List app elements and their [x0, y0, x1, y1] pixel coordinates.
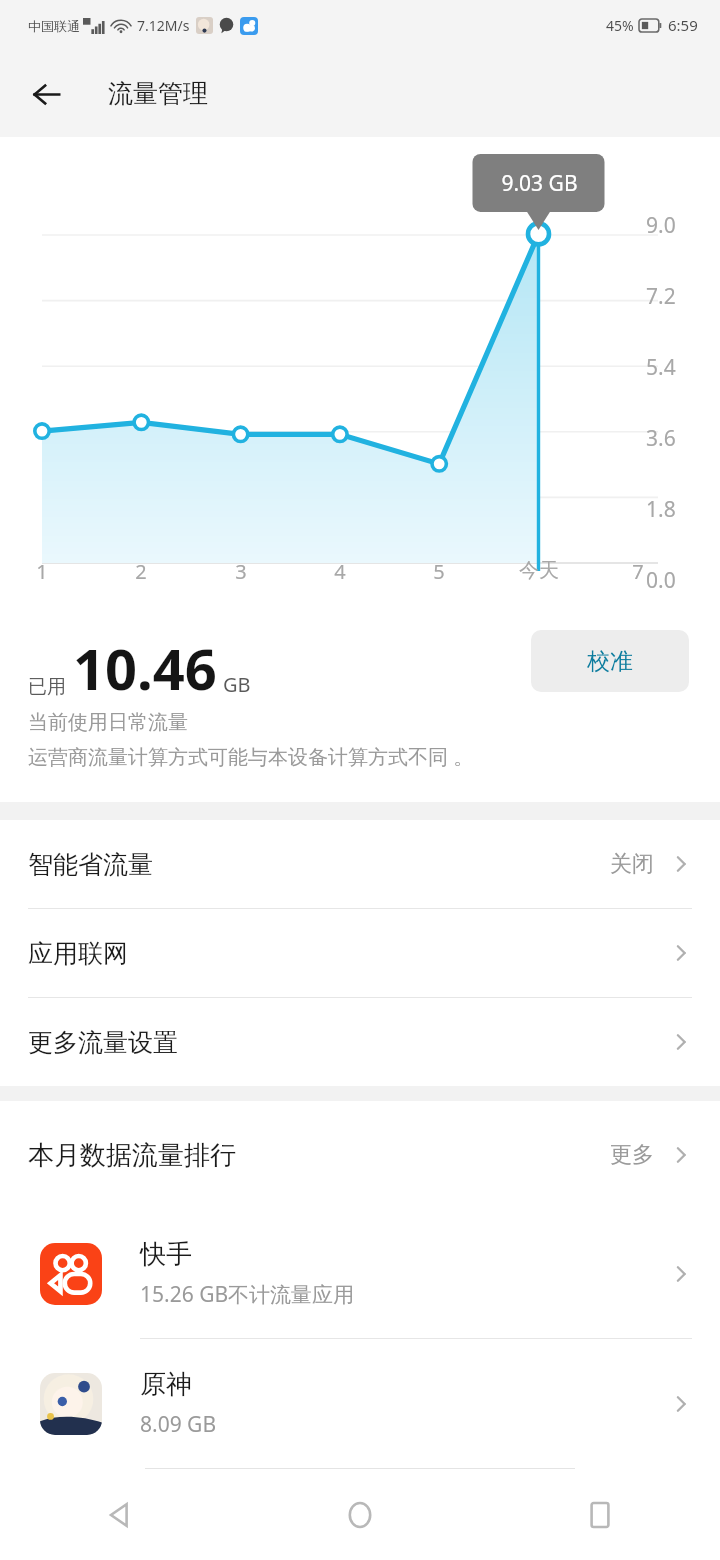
staticText: 15.26 GB不计流量应用 [140, 1280, 355, 1309]
staticText: 9.03 GB [487, 169, 592, 198]
staticText: 3.6 [646, 424, 676, 453]
button[interactable]: 本月数据流量排行 [0, 1101, 720, 1209]
button[interactable]: 智能省流量 [0, 820, 720, 909]
staticText: GB [223, 671, 251, 698]
staticText: 7.12M/s [137, 16, 190, 35]
button[interactable]: 原神 [0, 1339, 720, 1468]
button[interactable]: 返回 [18, 66, 74, 122]
staticText: 校准 [587, 647, 633, 676]
staticText: 7.2 [646, 282, 676, 311]
staticText: 45% [606, 16, 634, 35]
staticText: 本月数据流量排行 [28, 1139, 236, 1172]
staticText: 5.4 [646, 353, 676, 382]
staticText: 6:59 [668, 15, 698, 35]
staticText: 当前使用日常流量 [28, 710, 188, 735]
staticText: 7 [616, 558, 660, 585]
staticText: 0.0 [646, 566, 676, 595]
button[interactable]: 应用联网 [0, 909, 720, 998]
staticText: 流量管理 [108, 78, 208, 109]
staticText: 更多流量设置 [28, 1027, 178, 1058]
staticText: 1 [20, 558, 64, 585]
button[interactable]: 最近任务 [480, 1469, 720, 1560]
button[interactable]: 更多流量设置 [0, 998, 720, 1086]
staticText: 已用 [28, 675, 66, 699]
staticText: 9.0 [646, 211, 676, 240]
button[interactable]: 返回 [0, 1469, 240, 1560]
staticText: 8.09 GB [140, 1410, 217, 1439]
staticText: 3 [219, 558, 263, 585]
staticText: 运营商流量计算方式可能与本设备计算方式不同 。 [28, 743, 474, 770]
staticText: 5 [417, 558, 461, 585]
staticText: 关闭 [610, 850, 654, 878]
button[interactable]: 快手 [0, 1209, 720, 1339]
staticText: 2 [119, 558, 163, 585]
staticText: 智能省流量 [28, 849, 153, 880]
staticText: 原神 [140, 1368, 192, 1401]
staticText: 中国联通 [28, 18, 80, 34]
staticText: 4 [318, 558, 362, 585]
staticText: 1.8 [646, 495, 676, 524]
button[interactable]: 主屏幕 [240, 1469, 480, 1560]
staticText: 应用联网 [28, 938, 128, 969]
staticText: 快手 [140, 1238, 192, 1271]
staticText: 今天 [517, 558, 561, 583]
staticText: 10.46 [73, 630, 217, 706]
staticText: 更多 [610, 1141, 654, 1169]
button[interactable]: 校准 [531, 630, 689, 692]
